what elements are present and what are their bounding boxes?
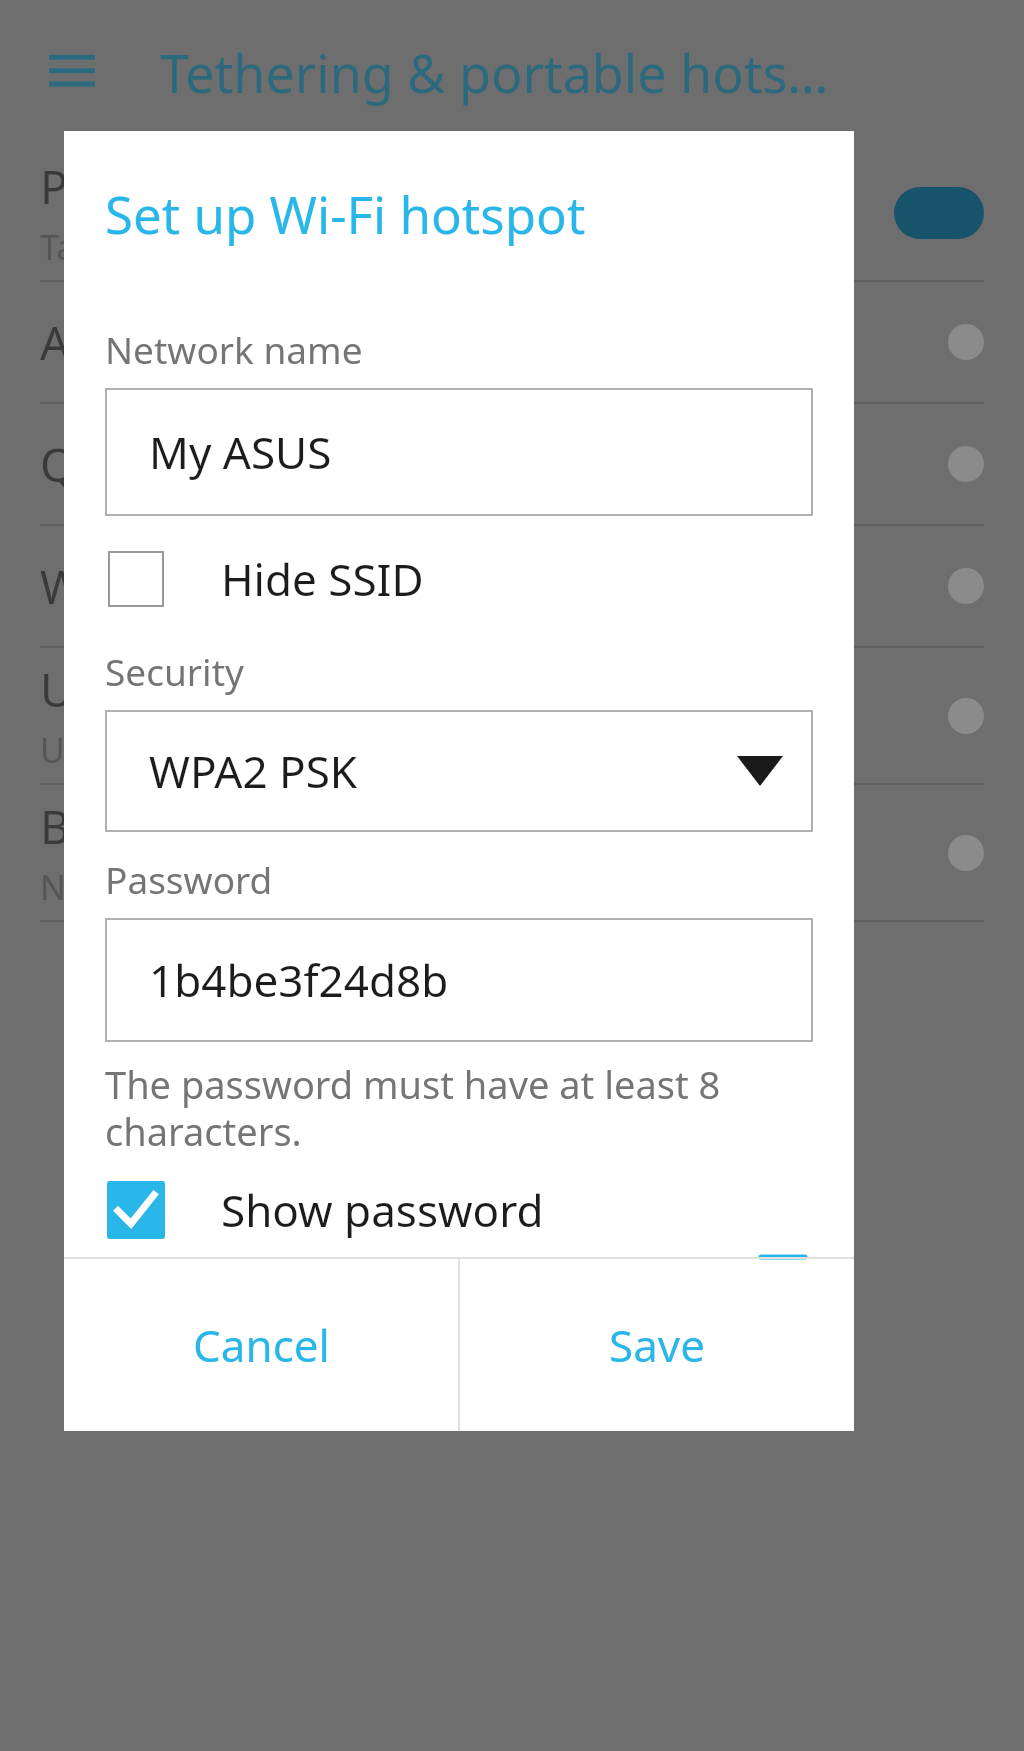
staticText: A (40, 311, 70, 374)
button[interactable]: 1b4be3f24d8b (105, 918, 813, 1042)
staticText: WPA2 PSK (149, 741, 358, 801)
staticText: W (40, 555, 83, 618)
staticText: U (40, 727, 65, 773)
staticText: Security (105, 646, 244, 696)
staticText: My ASUS (149, 422, 332, 482)
button[interactable]: Cancel (64, 1259, 458, 1431)
staticText: U (40, 658, 74, 721)
staticText: Tethering & portable hots… (160, 37, 1024, 108)
staticText: Network name (105, 324, 363, 374)
staticText: Ta (40, 224, 76, 270)
button[interactable]: P (0, 145, 1024, 280)
staticText: Q (40, 433, 76, 496)
button[interactable]: My ASUS (105, 388, 813, 516)
button[interactable]: Menu (34, 35, 110, 111)
staticText: Set up Wi-Fi hotspot (105, 179, 586, 248)
staticText: 1b4be3f24d8b (149, 950, 449, 1010)
staticText: N (40, 864, 66, 910)
staticText: The password must have at least 8 charac… (105, 1058, 813, 1157)
button[interactable]: Q (0, 404, 1024, 524)
button[interactable]: B (0, 785, 1024, 920)
staticText: Cancel (193, 1315, 330, 1375)
staticText: P (40, 155, 68, 218)
button[interactable]: W (0, 526, 1024, 646)
staticText: Save (609, 1315, 706, 1375)
button[interactable]: Hide SSID (105, 536, 813, 622)
button[interactable]: A (0, 282, 1024, 402)
staticText: B (40, 795, 70, 858)
button[interactable]: U (0, 648, 1024, 783)
staticText: Password (105, 854, 273, 904)
button[interactable]: Show password (105, 1167, 813, 1253)
button[interactable]: Save (460, 1259, 854, 1431)
staticText: Hide SSID (221, 549, 424, 609)
staticText: Show password (221, 1180, 544, 1240)
button[interactable]: WPA2 PSK (105, 710, 813, 832)
